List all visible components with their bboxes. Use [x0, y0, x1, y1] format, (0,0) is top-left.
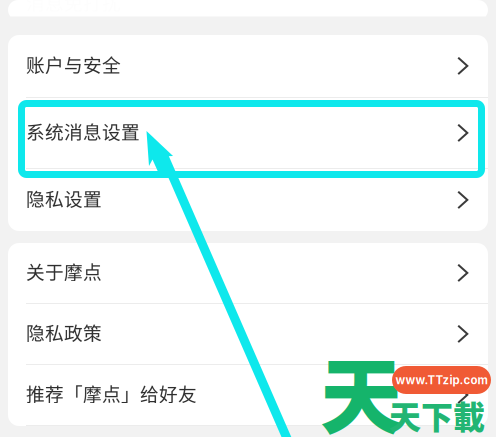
staticText: 天下載: [389, 392, 485, 437]
button[interactable]: 隐私设置: [8, 169, 488, 231]
staticText: 隐私设置: [26, 184, 102, 211]
staticText: 天: [320, 331, 403, 437]
staticText: 推荐「摩点」给好友: [26, 379, 197, 406]
staticText: 账户与安全: [26, 50, 121, 77]
button[interactable]: 隐私政策: [8, 304, 488, 364]
button[interactable]: 账户与安全: [8, 35, 488, 97]
staticText: www.TTzip.com: [395, 373, 487, 387]
staticText: 隐私政策: [26, 318, 102, 345]
button[interactable]: 关于摩点: [8, 243, 488, 303]
button[interactable]: 推荐「摩点」给好友: [8, 365, 488, 425]
button[interactable]: 系统消息设置: [8, 98, 488, 168]
staticText: 系统消息设置: [26, 117, 140, 144]
staticText: 关于摩点: [26, 257, 102, 284]
